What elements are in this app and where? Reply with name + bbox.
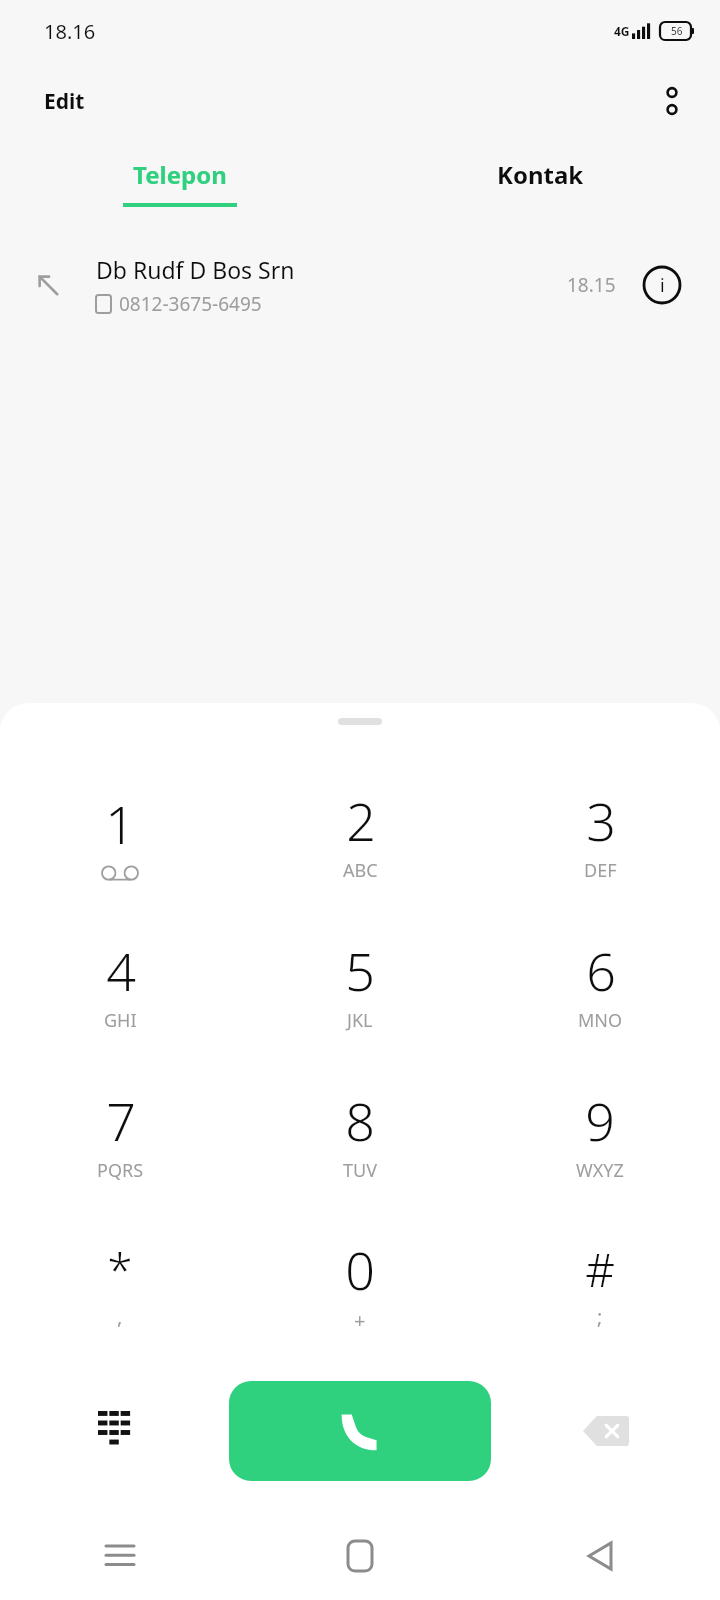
button[interactable]: Edit bbox=[32, 79, 97, 124]
button[interactable]: Call details bbox=[638, 261, 686, 309]
staticText: # bbox=[585, 1238, 615, 1301]
staticText: DEF bbox=[584, 858, 617, 883]
button[interactable]: 3 bbox=[480, 759, 720, 909]
staticText: 9 bbox=[585, 1085, 615, 1156]
staticText: + bbox=[354, 1307, 366, 1334]
staticText: 7 bbox=[106, 1085, 136, 1156]
staticText: ABC bbox=[343, 858, 378, 883]
staticText: WXYZ bbox=[576, 1158, 624, 1183]
staticText: 1 bbox=[105, 788, 135, 859]
staticText: 3 bbox=[586, 785, 616, 856]
button[interactable]: 0 bbox=[240, 1209, 480, 1359]
staticText: 4G bbox=[614, 23, 630, 39]
staticText: GHI bbox=[104, 1008, 137, 1033]
staticText: Telepon bbox=[133, 158, 227, 191]
button[interactable]: 5 bbox=[240, 909, 480, 1059]
button[interactable]: 8 bbox=[240, 1059, 480, 1209]
button[interactable]: More options bbox=[648, 77, 696, 125]
staticText: JKL bbox=[347, 1008, 373, 1033]
staticText: * bbox=[107, 1238, 133, 1301]
staticText: Kontak bbox=[497, 158, 584, 191]
staticText: , bbox=[117, 1303, 123, 1330]
button[interactable]: 2 bbox=[240, 759, 480, 909]
button[interactable]: Home bbox=[240, 1512, 480, 1600]
staticText: Edit bbox=[44, 87, 85, 116]
staticText: 56 bbox=[671, 24, 683, 38]
staticText: ; bbox=[597, 1303, 603, 1330]
staticText: 8 bbox=[345, 1085, 375, 1156]
button[interactable]: 4 bbox=[0, 909, 240, 1059]
staticText: MNO bbox=[578, 1008, 623, 1033]
staticText: 2 bbox=[346, 785, 376, 856]
staticText: Db Rudf D Bos Srn bbox=[96, 254, 295, 285]
staticText: 0812-3675-6495 bbox=[119, 291, 262, 317]
staticText: TUV bbox=[343, 1158, 377, 1183]
button[interactable]: Telepon bbox=[0, 158, 360, 207]
staticText: 0 bbox=[345, 1234, 375, 1305]
staticText: 6 bbox=[586, 935, 616, 1006]
button[interactable]: Db Rudf D Bos Srn bbox=[0, 237, 720, 333]
button[interactable]: # bbox=[480, 1209, 720, 1359]
button[interactable]: Backspace bbox=[491, 1381, 720, 1481]
button[interactable]: Recents bbox=[0, 1512, 240, 1600]
button[interactable]: 6 bbox=[480, 909, 720, 1059]
staticText: PQRS bbox=[97, 1158, 144, 1183]
staticText: 5 bbox=[345, 935, 375, 1006]
staticText: i bbox=[660, 273, 665, 298]
button[interactable]: Keypad bbox=[0, 1381, 229, 1481]
staticText: 4 bbox=[106, 935, 136, 1006]
button[interactable]: Back bbox=[480, 1512, 720, 1600]
button[interactable]: 1 bbox=[0, 759, 240, 909]
button[interactable]: 7 bbox=[0, 1059, 240, 1209]
button[interactable]: 9 bbox=[480, 1059, 720, 1209]
staticText: 18.15 bbox=[567, 272, 616, 298]
button[interactable]: Call bbox=[229, 1381, 491, 1481]
staticText: 18.16 bbox=[44, 18, 96, 45]
button[interactable]: Kontak bbox=[360, 158, 720, 207]
button[interactable]: * bbox=[0, 1209, 240, 1359]
